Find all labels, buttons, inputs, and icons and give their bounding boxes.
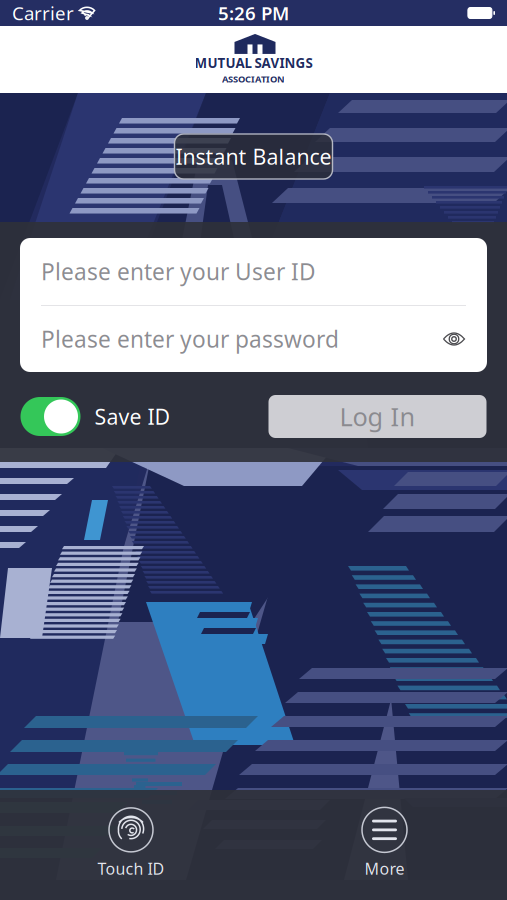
button[interactable]: Save ID [20,397,170,436]
staticText: Log In [339,400,415,433]
staticText: Instant Balance [175,142,331,171]
staticText: ASSOCIATION [222,73,285,85]
staticText: Please enter your User ID [41,256,316,286]
button[interactable]: Log In [268,395,486,438]
staticText: Touch ID [97,858,164,879]
staticText: Save ID [94,402,170,431]
staticText: 5:26 PM [218,1,289,25]
button[interactable]: Touch ID [71,804,191,882]
staticText: MUTUAL SAVINGS [194,54,312,72]
staticText: Please enter your password [41,324,339,354]
staticText: Carrier [12,1,74,25]
button[interactable]: Instant Balance [174,134,332,179]
button[interactable]: More [324,804,444,882]
staticText: More [364,858,404,879]
